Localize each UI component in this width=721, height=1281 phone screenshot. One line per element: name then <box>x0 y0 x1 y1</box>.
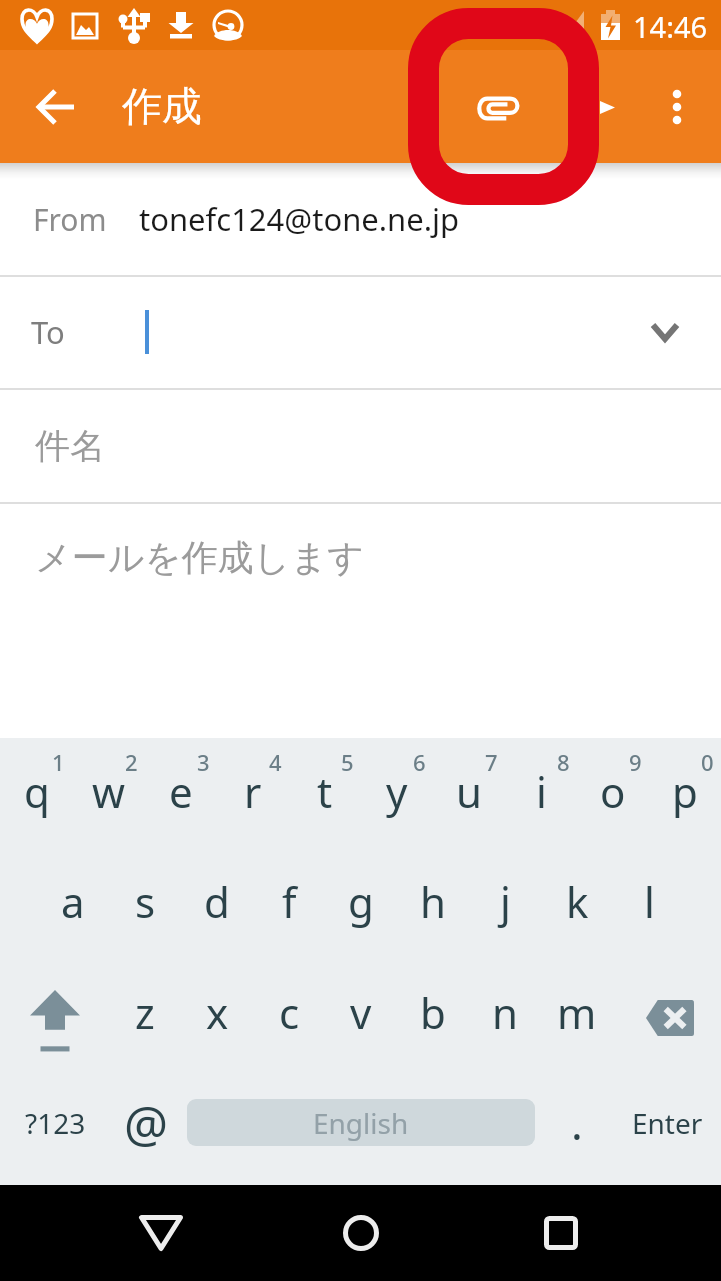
staticText: 1 <box>52 747 65 777</box>
button[interactable]: z <box>109 962 181 1074</box>
staticText: q <box>24 763 50 820</box>
button[interactable]: More options <box>643 73 711 141</box>
button[interactable]: s <box>109 850 181 962</box>
staticText: c <box>279 984 300 1041</box>
staticText: a <box>61 873 85 930</box>
button[interactable]: 2 <box>73 738 145 850</box>
button[interactable]: Home <box>313 1185 409 1281</box>
button[interactable]: n <box>469 962 541 1074</box>
button[interactable]: 5 <box>289 738 361 850</box>
staticText: @ <box>124 1090 169 1157</box>
staticText: 件名 <box>35 424 105 468</box>
staticText: d <box>204 873 230 930</box>
button[interactable]: Delete <box>613 962 721 1074</box>
staticText: o <box>600 763 626 820</box>
button[interactable]: 3 <box>145 738 217 850</box>
staticText: w <box>92 763 126 820</box>
staticText: y <box>386 763 408 820</box>
staticText: ?123 <box>25 1104 86 1142</box>
button[interactable]: Enter <box>613 1067 721 1178</box>
staticText: s <box>135 873 156 930</box>
staticText: l <box>644 873 655 930</box>
button[interactable]: f <box>253 850 325 962</box>
button[interactable]: j <box>469 850 541 962</box>
button[interactable]: Send <box>574 74 640 140</box>
button[interactable]: Back <box>113 1185 209 1281</box>
staticText: 14:46 <box>633 7 708 46</box>
button[interactable]: @ <box>110 1067 182 1178</box>
button[interactable]: d <box>181 850 253 962</box>
button[interactable]: c <box>253 962 325 1074</box>
button[interactable]: 1 <box>0 738 73 850</box>
staticText: 2 <box>125 747 138 777</box>
staticText: p <box>672 763 698 820</box>
button[interactable]: l <box>613 850 685 962</box>
button[interactable]: 4 <box>217 738 289 850</box>
button[interactable]: a <box>37 850 109 962</box>
button[interactable]: Recent apps <box>513 1185 609 1281</box>
button[interactable]: Shift <box>0 962 109 1074</box>
staticText: tonefc124@tone.ne.jp <box>139 198 460 240</box>
button[interactable]: Attach file <box>449 58 547 156</box>
staticText: k <box>566 873 589 930</box>
button[interactable]: 7 <box>433 738 505 850</box>
button[interactable]: m <box>541 962 613 1074</box>
staticText: From <box>33 199 107 240</box>
button[interactable]: b <box>397 962 469 1074</box>
button[interactable]: 0 <box>649 738 721 850</box>
staticText: n <box>492 984 518 1041</box>
staticText: f <box>282 873 297 930</box>
button[interactable]: Show more recipient fields <box>623 290 707 374</box>
button[interactable]: v <box>325 962 397 1074</box>
button[interactable]: Navigate up <box>24 74 90 140</box>
button[interactable]: h <box>397 850 469 962</box>
staticText: v <box>350 984 372 1041</box>
button[interactable]: 8 <box>505 738 577 850</box>
staticText: 8 <box>557 747 570 777</box>
button[interactable]: ?123 <box>0 1067 110 1178</box>
staticText: e <box>169 763 193 820</box>
staticText: i <box>536 763 547 820</box>
staticText: 7 <box>485 747 498 777</box>
staticText: u <box>456 763 482 820</box>
button[interactable]: k <box>541 850 613 962</box>
staticText: b <box>420 984 446 1041</box>
button[interactable]: . <box>541 1067 613 1178</box>
staticText: x <box>206 984 229 1041</box>
staticText: g <box>348 873 374 930</box>
button[interactable]: 6 <box>361 738 433 850</box>
staticText: Enter <box>632 1104 703 1142</box>
staticText: m <box>557 984 597 1041</box>
button[interactable]: g <box>325 850 397 962</box>
button[interactable]: x <box>181 962 253 1074</box>
staticText: 9 <box>629 747 642 777</box>
staticText: 4 <box>269 747 282 777</box>
staticText: t <box>317 763 333 820</box>
button[interactable]: 9 <box>577 738 649 850</box>
button[interactable]: English <box>187 1099 535 1146</box>
staticText: 作成 <box>122 81 202 131</box>
staticText: To <box>31 311 65 353</box>
staticText: 6 <box>413 747 426 777</box>
staticText: 0 <box>701 747 714 777</box>
staticText: メールを作成します <box>35 535 365 580</box>
staticText: z <box>135 984 155 1041</box>
staticText: r <box>244 763 262 820</box>
staticText: English <box>313 1104 409 1142</box>
staticText: j <box>500 873 511 930</box>
staticText: h <box>420 873 446 930</box>
staticText: 5 <box>341 747 354 777</box>
staticText: . <box>571 1093 583 1153</box>
staticText: 3 <box>197 747 210 777</box>
